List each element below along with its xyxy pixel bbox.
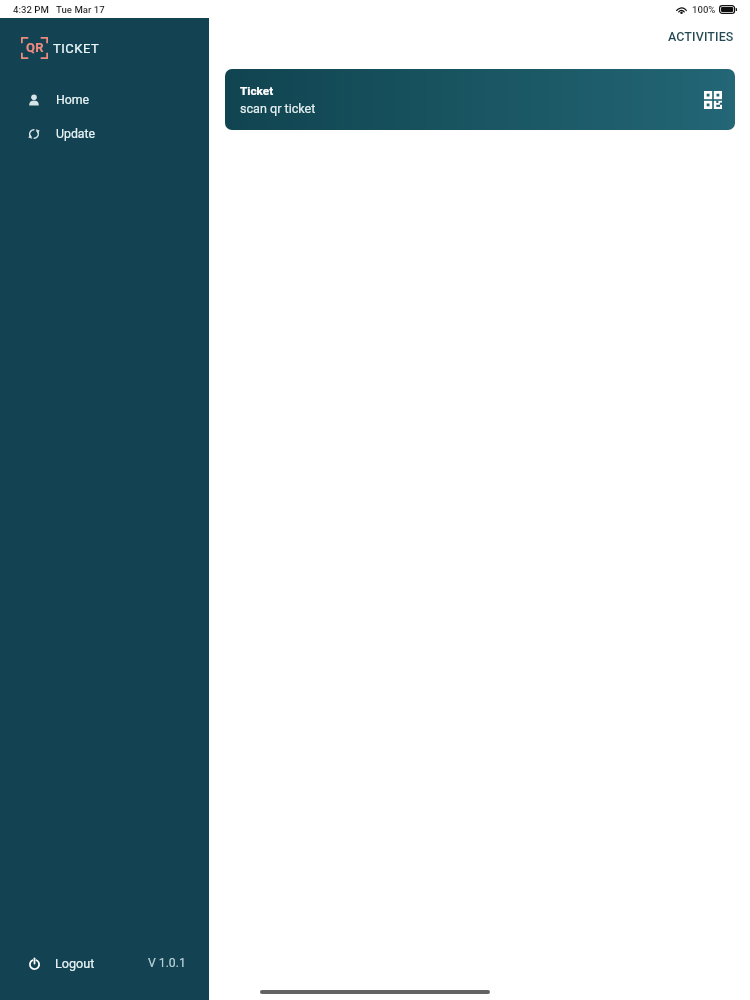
button[interactable]: QR	[21, 37, 100, 59]
staticText: QR	[26, 40, 44, 55]
staticText: TICKET	[53, 41, 100, 56]
staticText: 4:32 PM	[13, 4, 49, 15]
button[interactable]: Ticket	[225, 69, 735, 130]
button[interactable]: Logout	[0, 943, 209, 983]
button[interactable]: Scan QR ticket	[704, 91, 722, 109]
staticText: Home	[56, 93, 90, 107]
staticText: Logout	[55, 956, 95, 971]
staticText: Update	[56, 127, 96, 141]
button[interactable]: Home	[0, 83, 209, 117]
staticText: ACTIVITIES	[668, 29, 734, 44]
staticText: Tue Mar 17	[56, 4, 105, 15]
button[interactable]: Update	[0, 117, 209, 151]
staticText: V 1.0.1	[148, 956, 186, 970]
staticText: Ticket	[240, 84, 274, 98]
staticText: scan qr ticket	[240, 101, 316, 116]
staticText: 100%	[692, 4, 716, 15]
